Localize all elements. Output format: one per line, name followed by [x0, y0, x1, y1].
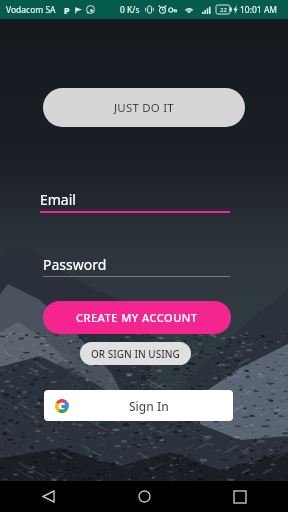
staticText: OR SIGN IN USING — [91, 347, 180, 361]
staticText: 22 — [220, 6, 227, 14]
button[interactable]: Home — [96, 481, 192, 512]
button[interactable]: CREATE MY ACCOUNT — [43, 301, 231, 334]
staticText: Email — [40, 190, 76, 209]
button[interactable]: Sign In — [44, 390, 233, 421]
staticText: Password — [43, 255, 107, 274]
staticText: CREATE MY ACCOUNT — [76, 310, 198, 325]
staticText: 10:01 AM — [240, 4, 278, 16]
button[interactable]: Recents — [192, 481, 288, 512]
staticText: JUST DO IT — [114, 100, 174, 116]
staticText: P — [64, 4, 70, 16]
button[interactable]: JUST DO IT — [43, 88, 245, 127]
button[interactable]: Back — [0, 481, 96, 512]
button[interactable]: Password — [43, 255, 230, 277]
staticText: Sign In — [129, 398, 169, 414]
staticText: Vodacom SA — [6, 4, 56, 16]
button[interactable]: OR SIGN IN USING — [80, 342, 191, 365]
button[interactable]: Email — [40, 190, 230, 213]
staticText: 0 K/s — [120, 4, 140, 16]
